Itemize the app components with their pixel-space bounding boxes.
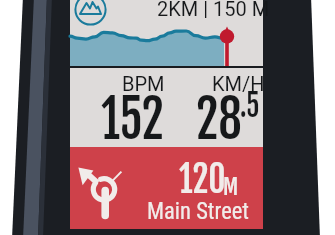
staticText: .5 xyxy=(240,87,260,125)
staticText: BPM xyxy=(122,72,165,95)
staticText: 120 xyxy=(179,156,226,203)
button[interactable]: Roundabout, take exit xyxy=(70,147,132,229)
staticText: Main Street xyxy=(147,197,249,225)
other: Elevation profile xyxy=(74,0,107,26)
staticText: KM/H xyxy=(212,72,265,95)
staticText: 28 xyxy=(196,87,242,152)
staticText: M xyxy=(223,173,239,201)
staticText: 2KM | 150 M xyxy=(157,0,270,20)
staticText: 152 xyxy=(101,87,164,152)
